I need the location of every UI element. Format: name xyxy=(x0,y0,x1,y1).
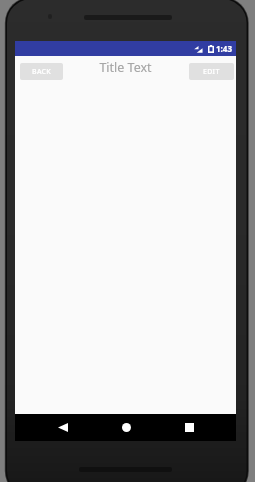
button[interactable]: EDIT xyxy=(189,63,234,80)
button[interactable]: Recent apps xyxy=(168,414,210,441)
staticText: EDIT xyxy=(203,67,220,77)
button[interactable]: Home xyxy=(105,414,147,441)
button[interactable]: Back xyxy=(42,414,84,441)
staticText: BACK xyxy=(32,67,52,77)
staticText: Title Text xyxy=(99,59,152,76)
button[interactable]: BACK xyxy=(20,63,63,80)
staticText: 1:43 xyxy=(216,43,232,54)
